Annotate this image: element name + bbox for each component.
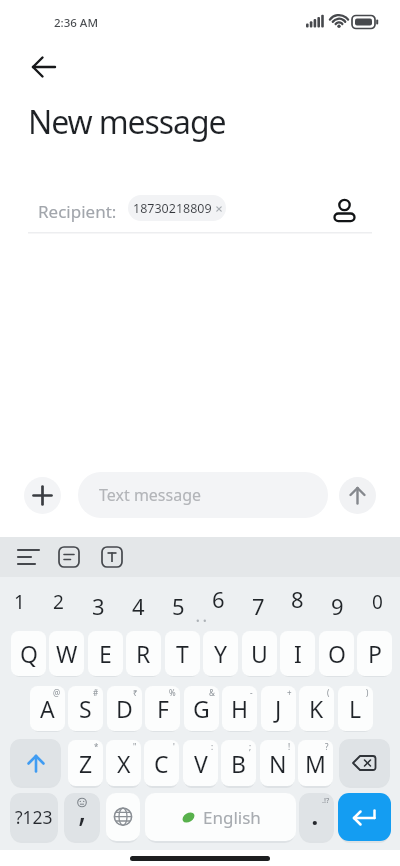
button[interactable]: B	[221, 740, 256, 786]
button[interactable]: U	[242, 631, 277, 676]
staticText: V	[194, 748, 208, 779]
button[interactable]: 2	[42, 587, 74, 617]
staticText: W	[56, 638, 78, 669]
staticText: 18730218809	[133, 200, 212, 217]
staticText: "	[133, 741, 137, 752]
staticText: D	[116, 693, 133, 724]
staticText: I	[294, 638, 302, 669]
button[interactable]	[58, 546, 80, 568]
button[interactable]: H	[222, 686, 257, 731]
button[interactable]: 0	[361, 587, 393, 617]
button[interactable]	[101, 546, 123, 568]
button[interactable]: Z	[68, 740, 103, 786]
button[interactable]: .!?	[299, 793, 334, 841]
staticText: 9	[331, 591, 344, 621]
button[interactable]: X	[106, 740, 141, 786]
staticText: X	[117, 748, 131, 779]
button[interactable]: O	[319, 631, 354, 676]
staticText: ?	[325, 741, 329, 752]
staticText: .!?	[322, 795, 330, 805]
button[interactable]	[339, 477, 376, 514]
staticText: 2:36 AM	[54, 15, 98, 31]
staticText: 2	[53, 589, 64, 615]
button[interactable]: I	[280, 631, 315, 676]
staticText: New message	[28, 100, 226, 144]
staticText: N	[269, 748, 287, 779]
button[interactable]: T	[165, 631, 200, 676]
staticText: ?123	[15, 805, 53, 829]
staticText: 8	[291, 584, 304, 614]
button[interactable]: 5	[162, 591, 194, 621]
button[interactable]: P	[357, 631, 392, 676]
button[interactable]: 6	[202, 584, 234, 614]
button[interactable]: 4	[122, 591, 154, 621]
staticText: C	[154, 748, 169, 779]
staticText: )	[366, 687, 369, 698]
button[interactable]: 1	[3, 587, 35, 617]
button[interactable]	[10, 739, 61, 786]
button[interactable]: English	[145, 793, 296, 841]
staticText: ₹	[133, 687, 138, 698]
button[interactable]: K	[299, 686, 334, 731]
staticText: A	[40, 693, 55, 724]
staticText: ;	[249, 741, 252, 752]
button[interactable]: 9	[321, 591, 353, 621]
staticText: !	[288, 741, 291, 752]
staticText: '	[173, 741, 175, 752]
staticText: 6	[212, 584, 225, 614]
button[interactable]: 18730218809	[128, 195, 226, 221]
staticText: 1	[14, 589, 25, 615]
button[interactable]: ?123	[10, 793, 58, 841]
staticText: ,	[78, 793, 87, 832]
button[interactable]: S	[68, 686, 103, 731]
staticText: @	[53, 687, 61, 698]
button[interactable]: Y	[203, 631, 238, 676]
button[interactable]: G	[184, 686, 219, 731]
button[interactable]: ,	[64, 793, 100, 841]
staticText: L	[349, 693, 362, 724]
staticText: &	[209, 687, 215, 698]
staticText: Z	[79, 748, 93, 779]
staticText: F	[157, 693, 169, 724]
button[interactable]: J	[261, 686, 296, 731]
button[interactable]	[106, 793, 140, 841]
staticText: G	[193, 693, 210, 724]
button[interactable]: L	[338, 686, 373, 731]
button[interactable]: E	[88, 631, 123, 676]
button[interactable]	[24, 477, 61, 514]
button[interactable]: Q	[11, 631, 46, 676]
staticText: 4	[132, 591, 145, 621]
button[interactable]: R	[126, 631, 161, 676]
staticText: K	[309, 693, 324, 724]
button[interactable]	[330, 192, 359, 224]
button[interactable]: A	[30, 686, 65, 731]
staticText: #	[93, 687, 99, 698]
button[interactable]	[26, 53, 60, 81]
staticText: 0	[372, 589, 383, 615]
button[interactable]: M	[298, 740, 333, 786]
staticText: 3	[92, 591, 105, 621]
button[interactable]	[339, 739, 390, 786]
button[interactable]: C	[144, 740, 179, 786]
button[interactable]: 8	[281, 584, 313, 614]
staticText: :	[211, 741, 214, 752]
button[interactable]	[17, 546, 41, 568]
staticText: English	[203, 806, 261, 829]
button[interactable]: 7	[242, 591, 274, 621]
staticText: *	[94, 741, 99, 752]
staticText: B	[231, 748, 246, 779]
button[interactable]: N	[260, 740, 295, 786]
button[interactable]: Text message	[78, 472, 328, 518]
staticText: R	[136, 638, 151, 669]
staticText: %	[169, 687, 176, 698]
button[interactable]: W	[49, 631, 84, 676]
button[interactable]	[338, 793, 391, 841]
staticText: P	[368, 638, 382, 669]
staticText: -	[250, 687, 253, 698]
button[interactable]: 3	[82, 591, 114, 621]
staticText: J	[275, 693, 282, 724]
button[interactable]: F	[145, 686, 180, 731]
staticText: Text message	[99, 484, 202, 506]
button[interactable]: V	[183, 740, 218, 786]
button[interactable]: D	[107, 686, 142, 731]
